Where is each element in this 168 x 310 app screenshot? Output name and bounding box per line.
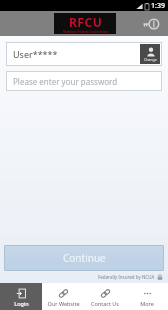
staticText: Login: [14, 300, 29, 307]
staticText: Contact Us: [91, 300, 119, 307]
staticText: User*****: [13, 48, 138, 60]
button[interactable]: Rates: [140, 13, 162, 35]
button[interactable]: Our Website: [42, 283, 84, 310]
button[interactable]: Contact Us: [84, 283, 126, 310]
button[interactable]: More: [126, 283, 168, 310]
button[interactable]: RFCU logo: [54, 13, 116, 34]
button[interactable]: User*****: [6, 42, 162, 66]
staticText: Our Website: [47, 300, 80, 307]
button[interactable]: Continue: [4, 245, 164, 271]
staticText: RFCU: [69, 14, 103, 30]
staticText: More: [140, 300, 154, 307]
staticText: Continue: [63, 251, 106, 265]
staticText: 1:39: [151, 1, 165, 11]
button[interactable]: Login: [0, 283, 42, 310]
staticText: Change: [144, 57, 157, 62]
button[interactable]: Please enter your password: [6, 71, 162, 91]
staticText: Redstone Federal Credit Union: [63, 30, 108, 34]
staticText: Please enter your password: [13, 76, 118, 87]
button[interactable]: Change user: [140, 44, 160, 64]
staticText: Federally Insured by NCUA: [98, 274, 155, 280]
